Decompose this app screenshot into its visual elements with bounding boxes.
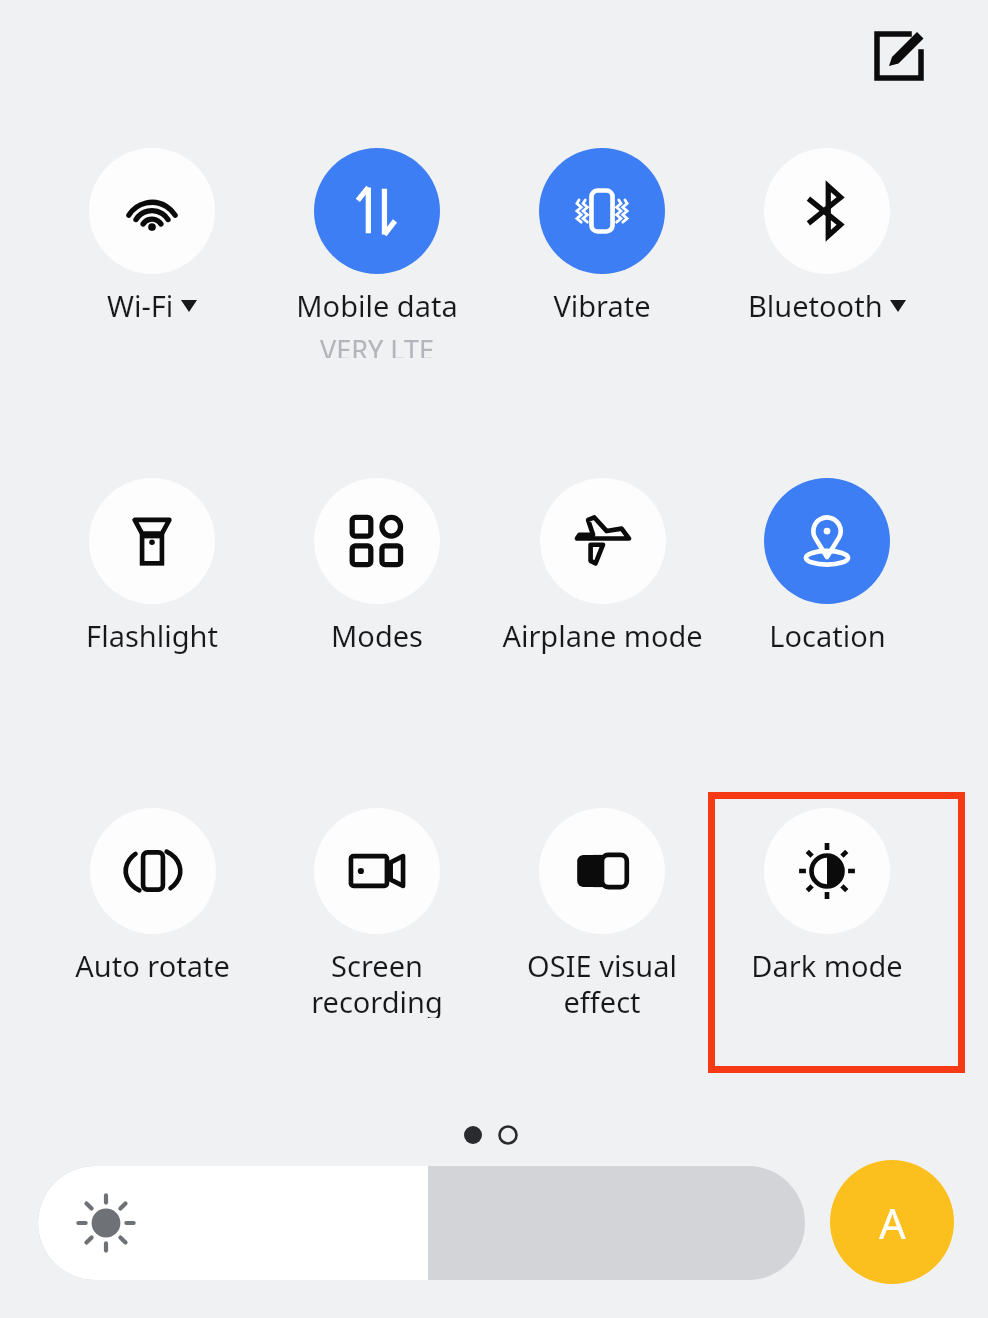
staticText: OSIE visual effect — [527, 946, 677, 1018]
button[interactable]: Dark mode — [715, 808, 939, 1018]
button[interactable]: Airplane mode — [490, 478, 714, 688]
staticText: Location — [769, 616, 886, 655]
button[interactable]: Screen recording — [265, 808, 489, 1018]
button[interactable]: Flashlight — [40, 478, 264, 688]
button[interactable]: OSIE visual effect — [490, 808, 714, 1018]
staticText: Bluetooth — [748, 286, 883, 325]
button[interactable]: Location — [715, 478, 939, 688]
staticText: Vibrate — [553, 286, 651, 325]
staticText: Mobile data — [296, 286, 458, 325]
button[interactable]: Auto rotate — [40, 808, 264, 1018]
button[interactable]: Mobile data — [265, 148, 489, 358]
staticText: Dark mode — [751, 946, 903, 985]
button[interactable]: Brightness — [38, 1166, 805, 1280]
staticText: A — [879, 1194, 906, 1251]
button[interactable]: Edit quick settings — [857, 14, 941, 98]
staticText: Auto rotate — [75, 946, 230, 985]
staticText: Wi-Fi — [107, 286, 174, 325]
staticText: Screen recording — [311, 946, 443, 1018]
staticText: Airplane mode — [502, 616, 703, 655]
button[interactable]: Wi-Fi — [40, 148, 264, 358]
button[interactable]: A — [830, 1160, 954, 1284]
button[interactable]: Vibrate — [490, 148, 714, 358]
staticText: VERY LTE — [320, 331, 434, 358]
staticText: Flashlight — [86, 616, 218, 655]
button[interactable]: Modes — [265, 478, 489, 688]
button[interactable]: Bluetooth — [715, 148, 939, 358]
staticText: Modes — [331, 616, 423, 655]
